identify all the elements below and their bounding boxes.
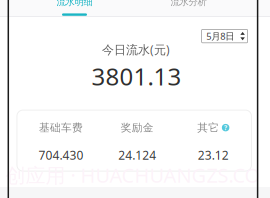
button[interactable]: 流水明细 (24, 0, 124, 7)
staticText: 今日流水(元) (102, 41, 170, 57)
staticText: 24.124 (118, 147, 156, 163)
button[interactable]: 5月8日 (202, 29, 248, 43)
staticText: 流水分析 (170, 0, 206, 8)
staticText: 流水明细 (56, 0, 92, 8)
staticText: 3801.13 (91, 60, 181, 92)
staticText: 704.430 (38, 147, 83, 163)
staticText: ? (224, 123, 227, 132)
staticText: 5月8日 (206, 30, 234, 42)
staticText: 基础车费 (39, 121, 83, 134)
staticText: 创应用 · HUACHUANGZS.CO (5, 162, 260, 188)
staticText: 其它 (197, 121, 219, 134)
staticText: 23.12 (198, 147, 229, 163)
button[interactable]: 流水分析 (138, 0, 238, 7)
staticText: 奖励金 (121, 121, 154, 134)
